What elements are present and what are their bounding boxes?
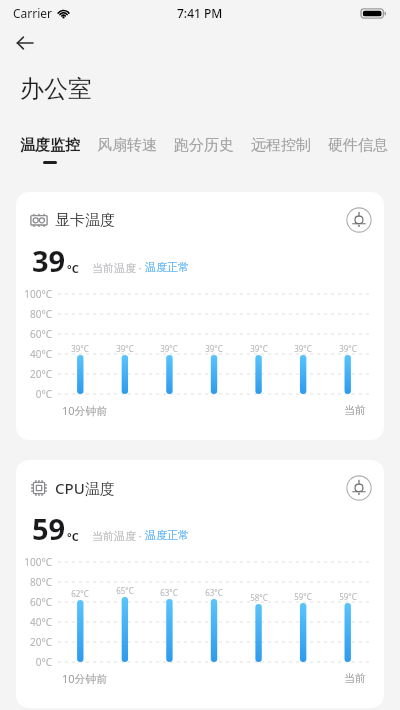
staticText: 60°C [29, 595, 52, 609]
button[interactable]: Back [6, 26, 44, 60]
staticText: 39°C [339, 343, 357, 354]
staticText: 40°C [29, 615, 52, 629]
staticText: 办公室 [20, 74, 92, 104]
staticText: 100°C [24, 287, 52, 301]
staticText: 远程控制 [251, 136, 311, 155]
staticText: 当前 [344, 671, 366, 685]
button[interactable]: 风扇转速 [97, 136, 157, 164]
staticText: 0°C [35, 655, 52, 669]
staticText: 20°C [29, 635, 52, 649]
staticText: °C [67, 261, 79, 276]
staticText: CPU温度 [55, 478, 115, 498]
button[interactable]: 跑分历史 [174, 136, 234, 164]
staticText: 39°C [294, 343, 312, 354]
staticText: 59°C [339, 591, 357, 602]
staticText: 7:41 PM [177, 5, 223, 21]
staticText: 80°C [29, 307, 52, 321]
staticText: 60°C [29, 327, 52, 341]
button[interactable]: Temperature alert settings [346, 207, 372, 233]
button[interactable]: 显卡温度 [16, 192, 384, 440]
staticText: 温度正常 [145, 260, 189, 274]
button[interactable]: Temperature alert settings [346, 475, 372, 501]
staticText: 59 [32, 509, 66, 548]
staticText: 0°C [35, 387, 52, 401]
staticText: 39°C [160, 343, 178, 354]
staticText: Carrier [13, 5, 53, 21]
staticText: 63°C [205, 587, 223, 598]
staticText: 65°C [116, 585, 134, 596]
staticText: 39°C [250, 343, 268, 354]
staticText: 80°C [29, 575, 52, 589]
staticText: 10分钟前 [62, 403, 108, 418]
staticText: 100°C [24, 555, 52, 569]
staticText: 10分钟前 [62, 671, 108, 686]
staticText: 显卡温度 [55, 211, 115, 230]
staticText: 62°C [71, 588, 89, 599]
staticText: 58°C [250, 592, 268, 603]
staticText: 硬件信息 [328, 136, 388, 155]
staticText: 39°C [71, 343, 89, 354]
staticText: 跑分历史 [174, 136, 234, 155]
staticText: 风扇转速 [97, 136, 157, 155]
staticText: °C [67, 529, 79, 544]
staticText: 当前温度 · [92, 528, 145, 543]
staticText: 59°C [294, 591, 312, 602]
button[interactable]: CPU温度 [16, 460, 384, 708]
staticText: 20°C [29, 367, 52, 381]
button[interactable]: 温度监控 [20, 136, 80, 164]
staticText: 63°C [160, 587, 178, 598]
staticText: 温度正常 [145, 528, 189, 542]
staticText: 40°C [29, 347, 52, 361]
staticText: 39 [32, 241, 66, 280]
button[interactable]: 硬件信息 [328, 136, 388, 164]
staticText: 温度监控 [20, 136, 80, 155]
staticText: 当前 [344, 403, 366, 417]
button[interactable]: 远程控制 [251, 136, 311, 164]
staticText: 39°C [205, 343, 223, 354]
staticText: 当前温度 · [92, 260, 145, 275]
staticText: 39°C [116, 343, 134, 354]
